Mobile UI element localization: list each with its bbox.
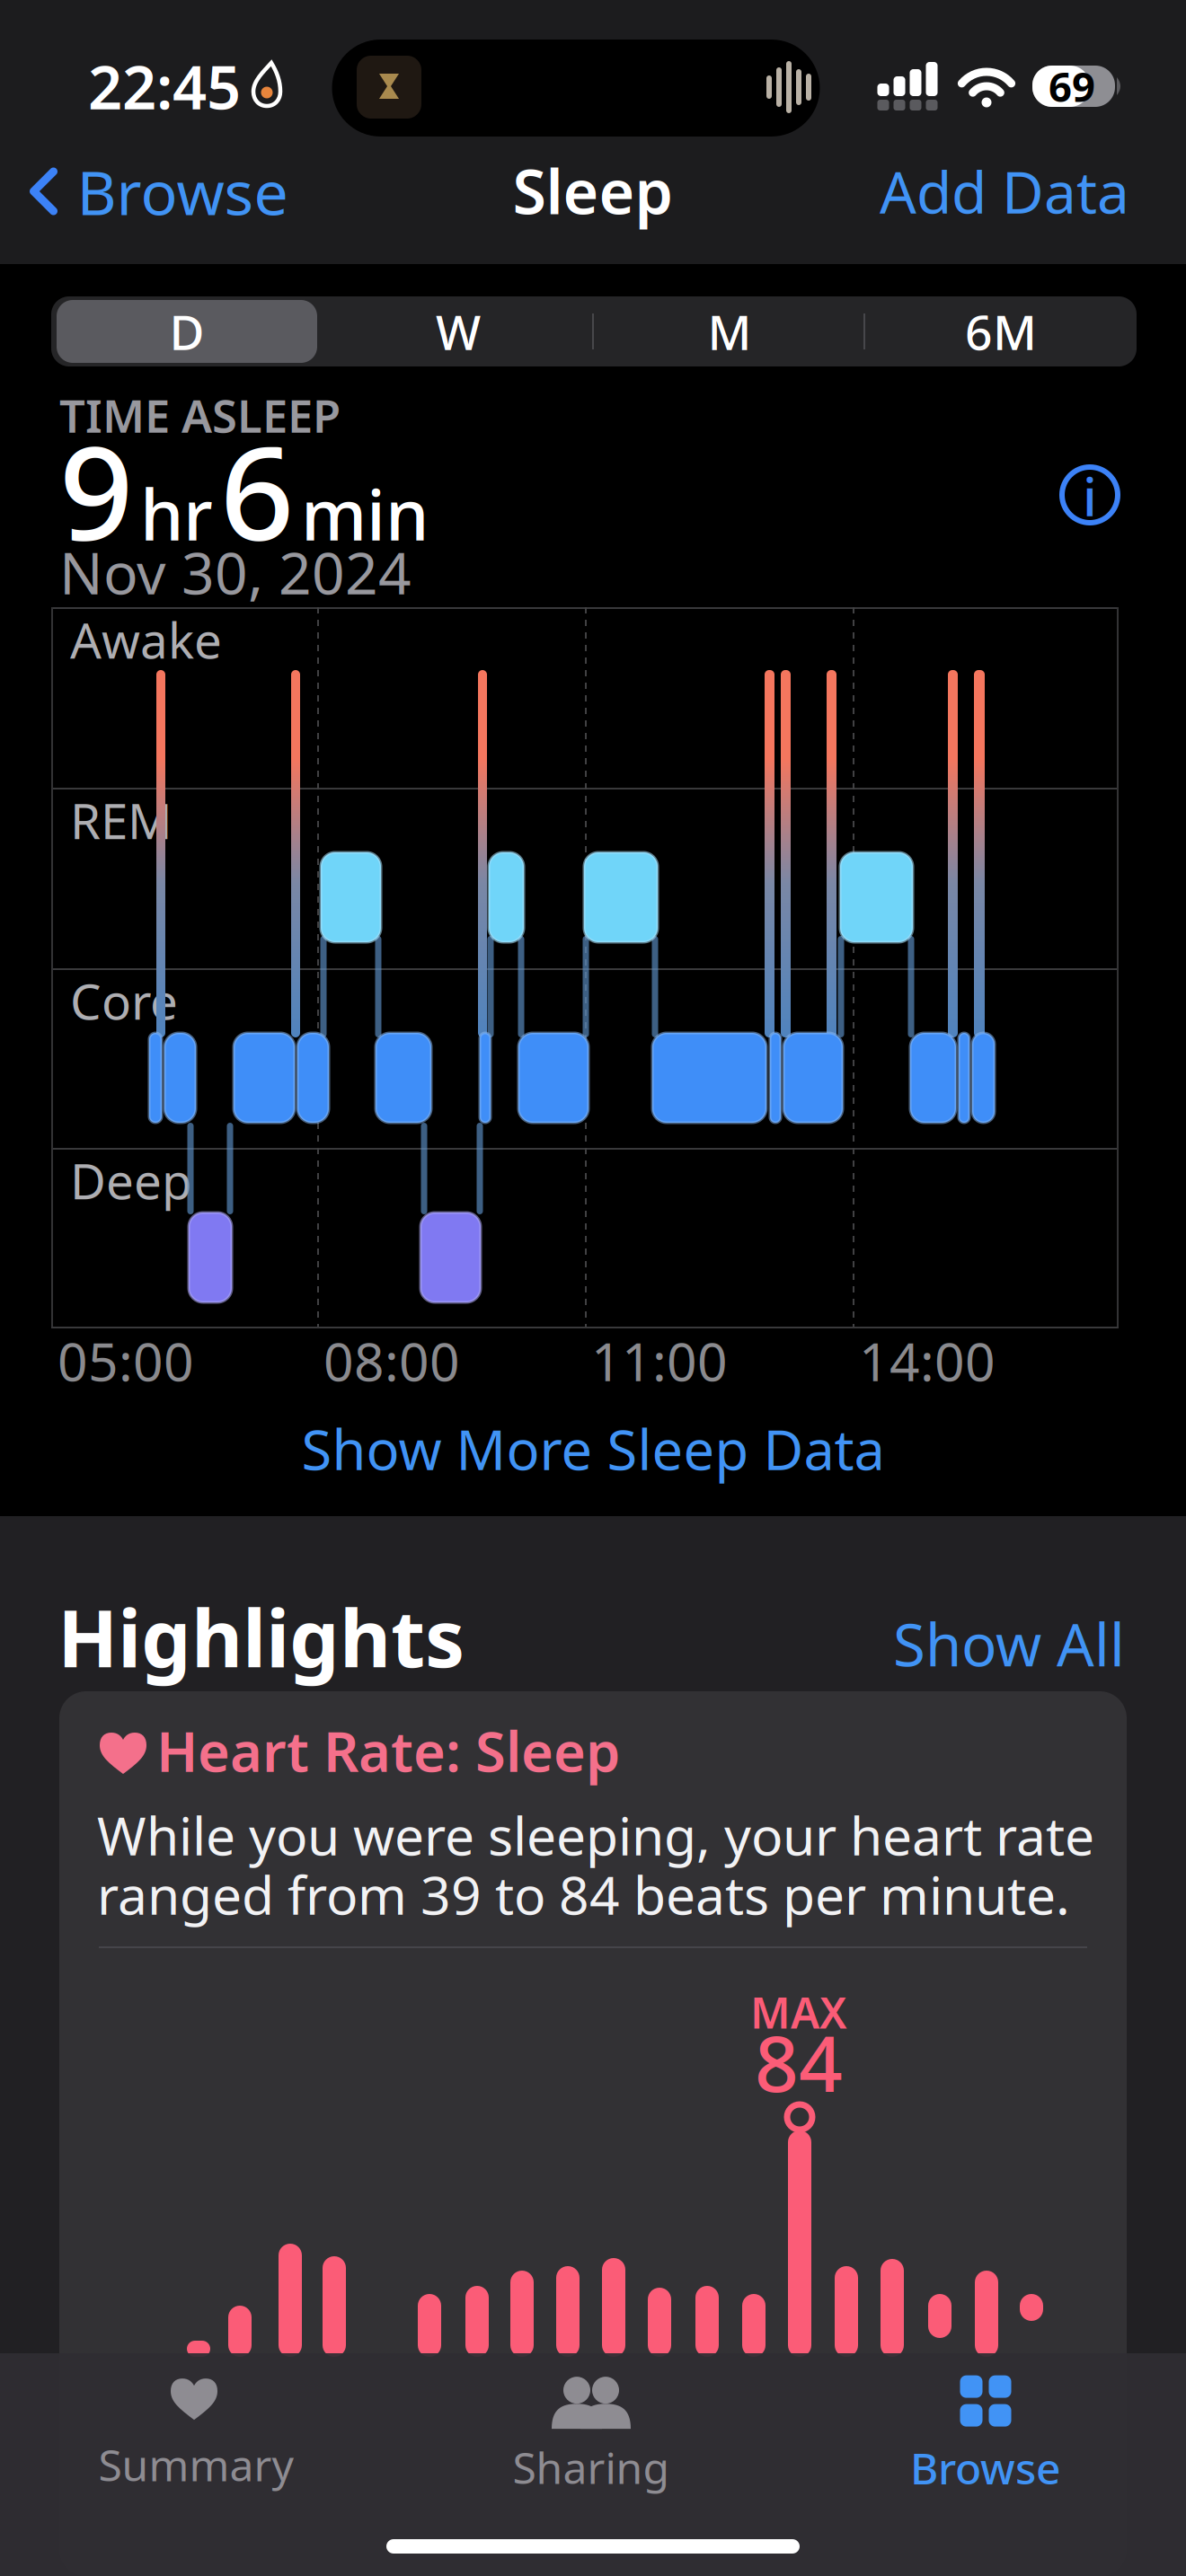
- staticText: Browse: [77, 151, 288, 232]
- button[interactable]: Heart Rate: Sleep: [0, 0, 1186, 2576]
- staticText: M: [708, 300, 752, 363]
- staticText: Heart Rate: Sleep: [156, 1714, 620, 1787]
- staticText: Add Data: [880, 153, 1129, 229]
- staticText: 22:45: [88, 46, 241, 126]
- staticText: D: [169, 300, 204, 363]
- staticText: 6M: [965, 300, 1037, 363]
- button[interactable]: Sharing: [456, 2364, 726, 2508]
- button[interactable]: Summary: [61, 2364, 331, 2508]
- staticText: REM: [70, 787, 173, 853]
- staticText: 14:00: [859, 1326, 996, 1396]
- staticText: 08:00: [323, 1326, 460, 1396]
- staticText: TIME ASLEEP: [59, 385, 341, 445]
- staticText: Show More Sleep Data: [301, 1412, 885, 1485]
- staticText: Nov 30, 2024: [59, 534, 412, 610]
- staticText: Awake: [70, 607, 222, 672]
- button[interactable]: D: [57, 300, 317, 363]
- button[interactable]: 6M: [871, 300, 1131, 363]
- staticText: While you were sleeping, your heart rate: [97, 1800, 1094, 1870]
- button[interactable]: Show More Sleep Data: [301, 1412, 885, 1485]
- staticText: Sleep: [513, 150, 673, 231]
- staticText: Core: [70, 968, 178, 1033]
- button[interactable]: Browse: [851, 2364, 1120, 2508]
- staticText: min: [301, 468, 429, 560]
- staticText: Highlights: [58, 1584, 465, 1689]
- staticText: Deep: [70, 1148, 192, 1213]
- staticText: W: [436, 300, 481, 363]
- staticText: ranged from 39 to 84 beats per minute.: [97, 1859, 1070, 1929]
- staticText: i: [1083, 461, 1097, 531]
- staticText: Sharing: [513, 2439, 670, 2496]
- button[interactable]: i: [1062, 460, 1118, 530]
- staticText: Show All: [893, 1605, 1125, 1683]
- staticText: 84: [755, 2011, 843, 2113]
- button[interactable]: Add Data: [770, 153, 1129, 229]
- staticText: 11:00: [591, 1326, 728, 1396]
- staticText: 9: [59, 405, 133, 576]
- button[interactable]: W: [328, 300, 589, 363]
- button[interactable]: Browse: [32, 151, 288, 232]
- staticText: 69: [1049, 59, 1095, 113]
- staticText: 05:00: [58, 1326, 194, 1396]
- staticText: Summary: [98, 2436, 293, 2493]
- staticText: MAX: [750, 1983, 847, 2041]
- staticText: hr: [140, 468, 213, 560]
- staticText: 6: [220, 405, 294, 576]
- button[interactable]: Show All: [766, 1605, 1125, 1683]
- staticText: Browse: [910, 2439, 1061, 2496]
- button[interactable]: M: [599, 300, 860, 363]
